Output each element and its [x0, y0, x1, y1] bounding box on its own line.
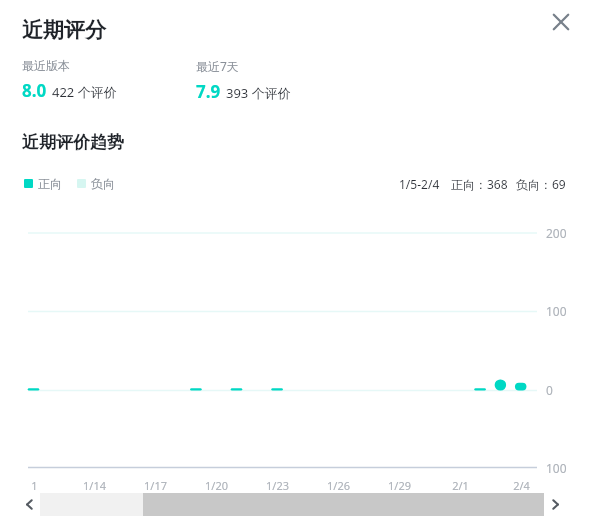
staticText: 近期评价趋势	[22, 132, 124, 153]
staticText: 1/29	[388, 478, 411, 493]
staticText: 最近版本	[22, 58, 70, 73]
staticText: 正向：368	[451, 176, 508, 192]
staticText: 1/14	[83, 478, 106, 493]
staticText: 近期评分	[22, 17, 106, 43]
staticText: 1	[31, 478, 38, 493]
staticText: 负向	[91, 176, 115, 191]
staticText: 100	[546, 460, 567, 476]
staticText: 2/1	[452, 478, 469, 493]
staticText: 2/4	[513, 478, 530, 493]
staticText: 负向：69	[516, 176, 566, 192]
staticText: 1/5-2/4	[399, 176, 440, 192]
staticText: 8.0	[22, 79, 47, 102]
button[interactable]	[40, 493, 544, 516]
staticText: 200	[546, 225, 567, 241]
staticText: 100	[546, 303, 567, 319]
staticText: 1/17	[144, 478, 167, 493]
button[interactable]: 正向	[24, 176, 115, 191]
button[interactable]: Scroll right	[544, 493, 566, 516]
staticText: 0	[546, 382, 553, 398]
staticText: 1/26	[327, 478, 350, 493]
staticText: 最近7天	[196, 58, 239, 74]
staticText: 393 个评价	[226, 84, 291, 102]
staticText: 422 个评价	[52, 83, 117, 101]
staticText: 7.9	[196, 80, 221, 103]
button[interactable]: Scroll left	[18, 493, 40, 516]
button[interactable]: Close	[543, 4, 579, 40]
staticText: 1/23	[266, 478, 289, 493]
staticText: 1/20	[205, 478, 228, 493]
staticText: 正向	[38, 176, 62, 191]
